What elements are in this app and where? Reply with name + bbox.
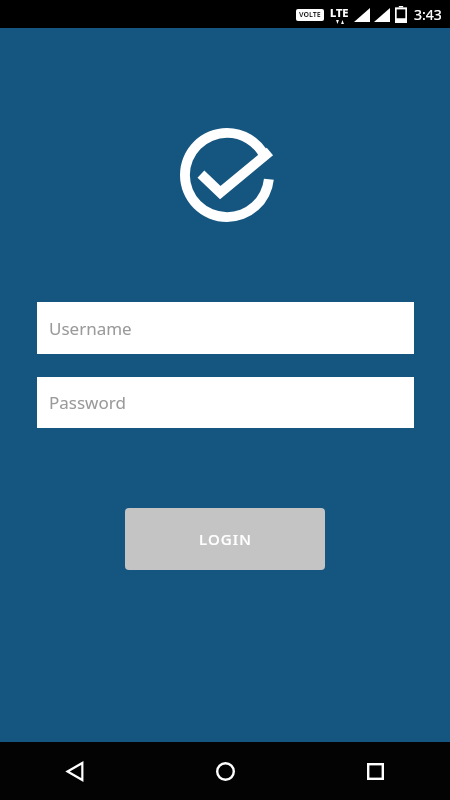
staticText: LOGIN <box>199 529 252 549</box>
staticText: LTE <box>330 5 349 20</box>
staticText: Password <box>49 391 126 414</box>
button[interactable]: Home <box>150 742 300 800</box>
button[interactable]: LOGIN <box>125 508 325 570</box>
staticText: Username <box>49 317 132 340</box>
button[interactable]: Username <box>37 302 414 354</box>
button[interactable]: Recent apps <box>300 742 450 800</box>
button[interactable]: Back <box>0 742 150 800</box>
staticText: VOLTE <box>299 10 321 20</box>
staticText: 3:43 <box>414 5 442 24</box>
button[interactable]: Password <box>37 377 414 428</box>
